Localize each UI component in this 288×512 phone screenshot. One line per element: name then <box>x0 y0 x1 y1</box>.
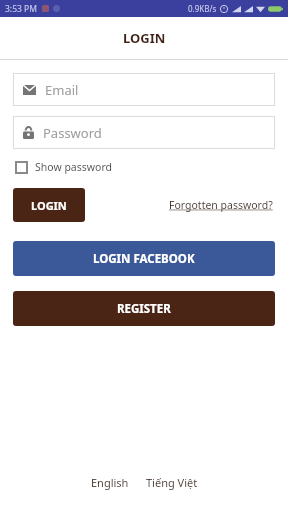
staticText: English <box>91 475 129 490</box>
staticText: Tiếng Việt <box>146 475 198 490</box>
button[interactable]: LOGIN FACEBOOK <box>13 241 275 276</box>
staticText: Email <box>45 81 79 99</box>
staticText: 3:53 PM <box>5 3 37 15</box>
other: Password <box>23 126 34 139</box>
staticText: LOGIN FACEBOOK <box>93 251 195 267</box>
button[interactable]: Show password <box>13 158 114 176</box>
staticText: LOGIN <box>31 198 67 213</box>
button[interactable]: Tiếng Việt <box>140 471 204 494</box>
staticText: Forgotten password? <box>169 198 273 212</box>
other: Email <box>23 85 36 95</box>
button[interactable]: REGISTER <box>13 291 275 326</box>
staticText: LOGIN <box>123 29 166 47</box>
button[interactable]: Email <box>13 73 275 106</box>
button[interactable]: English <box>85 471 135 494</box>
staticText: REGISTER <box>117 301 171 317</box>
staticText: Password <box>43 124 102 142</box>
button[interactable]: LOGIN <box>13 188 85 222</box>
staticText: Show password <box>35 160 112 174</box>
button[interactable]: Password <box>13 116 275 149</box>
button[interactable]: Forgotten password? <box>167 194 275 216</box>
staticText: 0.9KB/s <box>188 3 217 14</box>
